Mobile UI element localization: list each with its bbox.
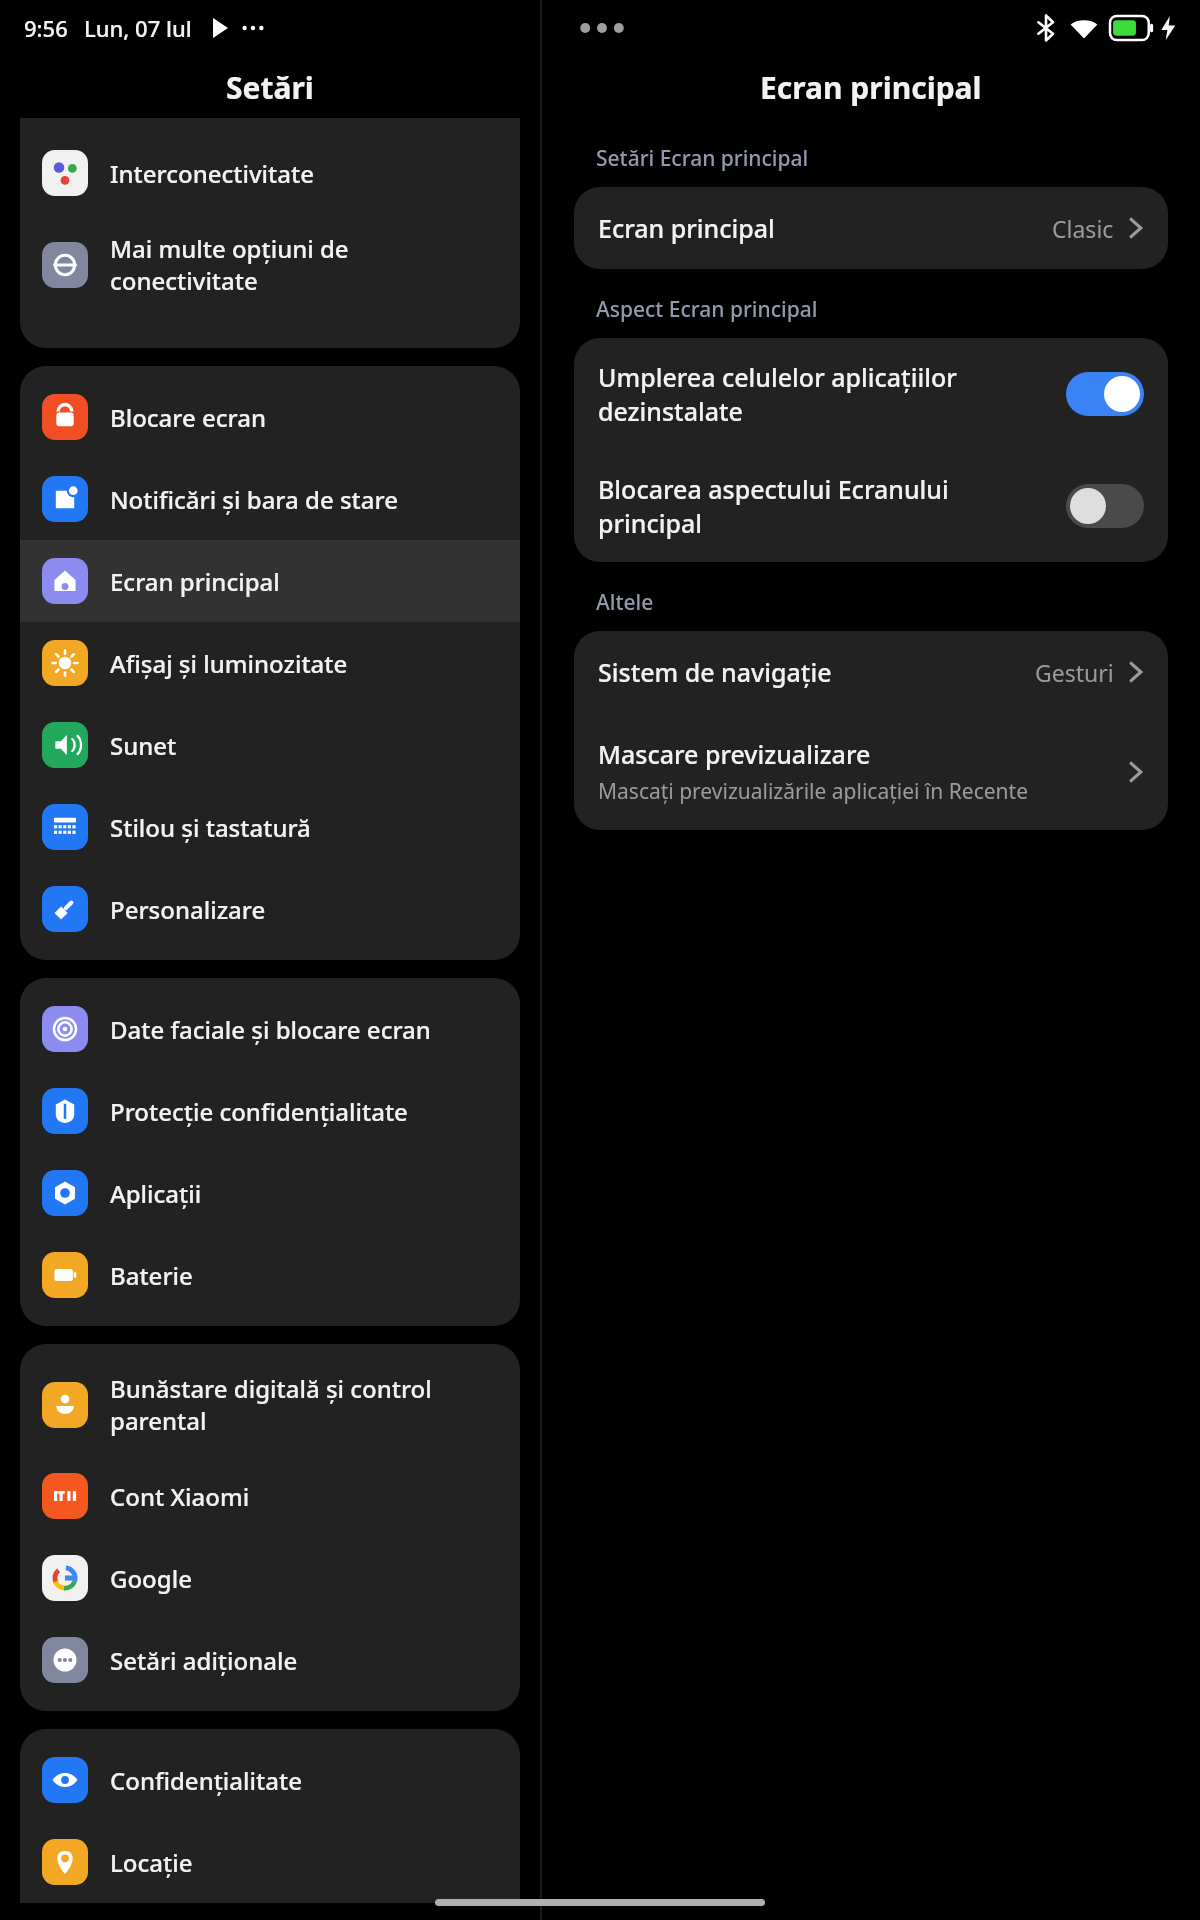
staticText: 9:56 [24,13,68,43]
staticText: Notificări și bara de stare [110,483,498,516]
staticText: Date faciale și blocare ecran [110,1013,498,1046]
staticText: Mai multe opțiuni de conectivitate [110,232,498,297]
staticText: Ecran principal [110,565,498,598]
staticText: Bunăstare digitală și control parental [110,1372,498,1437]
staticText: Interconectivitate [110,157,498,190]
staticText: Clasic [1052,213,1114,244]
staticText: Setări adiționale [110,1644,498,1677]
button[interactable]: Sistem de navigație [574,631,1168,713]
staticText: Locație [110,1846,498,1879]
staticText: Gesturi [1035,657,1114,688]
staticText: Blocarea aspectului Ecranului principal [598,472,1050,540]
button[interactable]: Interconectivitate [20,132,520,214]
staticText: Protecție confidențialitate [110,1095,498,1128]
button[interactable]: Blocare ecran [20,376,520,458]
button[interactable]: Locație [20,1821,520,1903]
button[interactable]: Personalizare [20,868,520,950]
button[interactable]: Protecție confidențialitate [20,1070,520,1152]
button[interactable]: Cont Xiaomi [20,1455,520,1537]
button[interactable]: Stilou și tastatură [20,786,520,868]
staticText: Aplicații [110,1177,498,1210]
staticText: Stilou și tastatură [110,811,498,844]
staticText: Baterie [110,1259,498,1292]
button[interactable]: Sunet [20,704,520,786]
staticText: Confidențialitate [110,1764,498,1797]
staticText: Altele [596,588,654,617]
staticText: Mascare previzualizare [598,737,871,771]
button[interactable]: Bunăstare digitală și control parental [20,1354,520,1455]
staticText: Mascați previzualizările aplicației în R… [598,777,1029,806]
staticText: Personalizare [110,893,498,926]
button[interactable]: Date faciale și blocare ecran [20,988,520,1070]
button[interactable]: Umplerea celulelor aplicațiilor dezinsta… [574,338,1168,450]
staticText: Sunet [110,729,498,762]
staticText: Google [110,1562,498,1595]
staticText: Setări Ecran principal [596,144,809,173]
staticText: Ecran principal [760,67,982,108]
staticText: Sistem de navigație [598,655,832,689]
staticText: Ecran principal [598,211,775,245]
staticText: Aspect Ecran principal [596,295,818,324]
staticText: Umplerea celulelor aplicațiilor dezinsta… [598,360,1050,428]
button[interactable]: Ecran principal [574,187,1168,269]
button[interactable]: Ecran principal [20,540,520,622]
staticText: Blocare ecran [110,401,498,434]
staticText: Afișaj și luminozitate [110,647,498,680]
button[interactable]: Mai multe opțiuni de conectivitate [20,214,520,315]
staticText: Setări [226,67,314,108]
button[interactable]: Setări adiționale [20,1619,520,1701]
button[interactable]: Google [20,1537,520,1619]
button[interactable]: Afișaj și luminozitate [20,622,520,704]
button[interactable]: Confidențialitate [20,1739,520,1821]
staticText: Lun, 07 lul [84,13,192,43]
button[interactable]: Mascare previzualizare [574,713,1168,830]
button[interactable]: Aplicații [20,1152,520,1234]
button[interactable]: Notificări și bara de stare [20,458,520,540]
button[interactable]: Blocarea aspectului Ecranului principal [574,450,1168,562]
staticText: Cont Xiaomi [110,1480,498,1513]
button[interactable]: Baterie [20,1234,520,1316]
